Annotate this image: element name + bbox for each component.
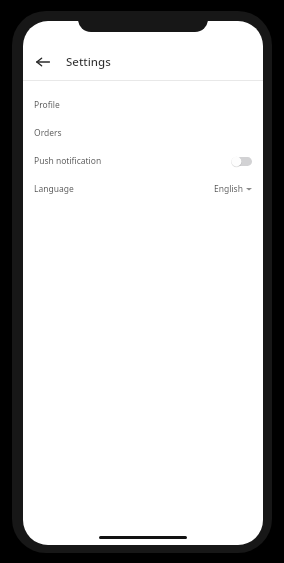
staticText: Orders <box>34 127 62 139</box>
staticText: Language <box>34 183 74 195</box>
staticText: English <box>214 183 243 195</box>
button[interactable]: Back <box>29 48 57 76</box>
button[interactable]: Orders <box>23 119 263 147</box>
button[interactable]: Push notification <box>23 147 263 175</box>
staticText: Push notification <box>34 155 102 167</box>
button[interactable] <box>231 156 252 167</box>
button[interactable]: Language <box>23 175 263 203</box>
staticText: Settings <box>66 54 111 70</box>
button[interactable]: Profile <box>23 91 263 119</box>
staticText: Profile <box>34 99 60 111</box>
